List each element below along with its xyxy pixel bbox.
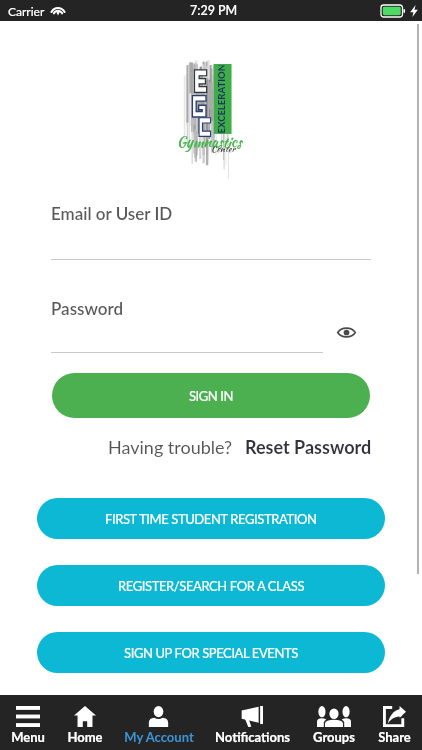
staticText: Groups: [313, 729, 355, 745]
button[interactable]: Reset Password: [245, 436, 372, 458]
staticText: Share: [378, 729, 411, 745]
button[interactable]: REGISTER/SEARCH FOR A CLASS: [37, 565, 385, 606]
staticText: FIRST TIME STUDENT REGISTRATION: [105, 511, 317, 527]
button[interactable]: Show password: [331, 317, 361, 347]
staticText: Password: [51, 298, 124, 318]
staticText: SIGN IN: [189, 388, 233, 404]
staticText: Carrier: [8, 4, 45, 18]
staticText: Having trouble?: [108, 436, 233, 458]
button[interactable]: Home: [56, 695, 114, 750]
staticText: Menu: [11, 729, 45, 745]
staticText: EXCELERATION: [215, 65, 226, 133]
button[interactable]: SIGN IN: [52, 373, 370, 418]
button[interactable]: Notifications: [203, 695, 301, 750]
button[interactable]: Share: [366, 695, 422, 750]
button[interactable]: FIRST TIME STUDENT REGISTRATION: [37, 498, 385, 539]
staticText: Email or User ID: [51, 203, 173, 223]
staticText: Center: [211, 142, 236, 155]
staticText: SIGN UP FOR SPECIAL EVENTS: [124, 645, 298, 661]
staticText: 7:29 PM: [190, 3, 238, 18]
staticText: Home: [67, 729, 103, 745]
staticText: Notifications: [215, 729, 290, 745]
staticText: Gymnastics: [177, 132, 242, 152]
button[interactable]: Groups: [301, 695, 366, 750]
staticText: Reset Password: [245, 436, 372, 458]
button[interactable]: Menu: [0, 695, 56, 750]
staticText: REGISTER/SEARCH FOR A CLASS: [118, 578, 305, 594]
button[interactable]: My Account: [114, 695, 203, 750]
staticText: My Account: [124, 729, 194, 745]
button[interactable]: SIGN UP FOR SPECIAL EVENTS: [37, 632, 385, 673]
